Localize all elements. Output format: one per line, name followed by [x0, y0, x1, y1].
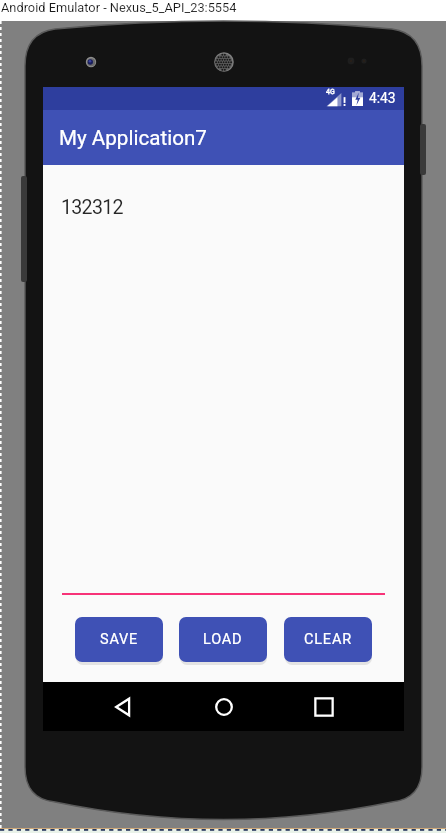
button[interactable]: SAVE: [75, 617, 163, 662]
button[interactable]: Back: [98, 682, 147, 731]
button[interactable]: CLEAR: [284, 617, 372, 662]
button[interactable]: Home: [199, 682, 248, 731]
button[interactable]: LOAD: [179, 617, 267, 662]
staticText: 4:43: [369, 90, 396, 106]
staticText: Android Emulator - Nexus_5_API_23:5554: [1, 0, 237, 15]
staticText: My Application7: [59, 126, 207, 150]
staticText: SAVE: [100, 631, 139, 648]
staticText: LOAD: [203, 631, 243, 648]
staticText: CLEAR: [304, 631, 352, 648]
button[interactable]: Recent apps: [299, 682, 348, 731]
staticText: 132312: [61, 196, 123, 219]
staticText: 4G: [326, 88, 335, 96]
